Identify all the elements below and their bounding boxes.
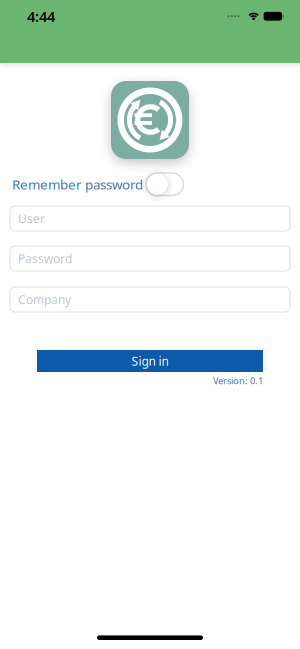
staticText: Version: 0.1 — [213, 374, 263, 387]
button[interactable]: Sign in — [37, 350, 263, 372]
staticText — [18, 250, 21, 266]
staticText: Company — [18, 291, 71, 307]
staticText: Sign in — [131, 353, 168, 369]
staticText: 4:44 — [27, 6, 55, 26]
staticText: Remember password — [12, 175, 143, 193]
button[interactable]: Remember password — [146, 173, 183, 195]
staticText: Password — [18, 250, 72, 266]
staticText: User — [18, 210, 45, 226]
staticText — [18, 291, 21, 307]
textField[interactable] — [18, 210, 290, 226]
textField[interactable] — [18, 291, 290, 307]
staticText — [18, 210, 21, 226]
textField[interactable] — [18, 250, 290, 266]
